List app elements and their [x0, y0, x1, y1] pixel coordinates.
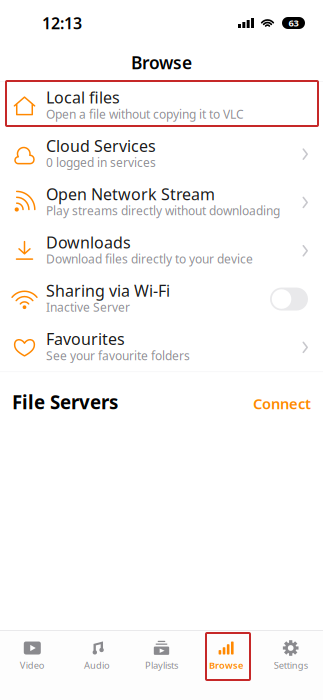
button[interactable]: Settings [258, 631, 323, 700]
staticText: Downloads [46, 232, 131, 253]
staticText: Open Network Stream [46, 183, 215, 205]
staticText: 63 [288, 17, 298, 29]
button[interactable]: Audio [65, 631, 129, 700]
button[interactable]: Connect [253, 394, 323, 414]
staticText: Browse [209, 659, 243, 671]
button[interactable]: Playlists [129, 631, 194, 700]
staticText: Local files [46, 87, 120, 108]
staticText: Cloud Services [46, 135, 156, 156]
button[interactable]: Cloud Services [0, 130, 323, 178]
staticText: Playlists [145, 659, 178, 671]
button[interactable]: Sharing via Wi-Fi [0, 275, 323, 323]
staticText: Audio [84, 659, 110, 671]
button[interactable]: Downloads [0, 227, 323, 275]
staticText: Play streams directly without downloadin… [46, 203, 280, 218]
staticText: Connect [253, 394, 311, 413]
staticText: Open a file without copying it to VLC [46, 106, 244, 122]
staticText: Video [20, 659, 45, 671]
staticText: Settings [274, 659, 308, 671]
button[interactable]: Video [0, 631, 65, 700]
button[interactable]: Open Network Stream [0, 178, 323, 227]
staticText: Sharing via Wi-Fi [46, 280, 170, 301]
staticText: Download files directly to your device [46, 251, 253, 267]
staticText: Inactive Server [46, 299, 130, 315]
button[interactable]: Local files [0, 82, 323, 130]
button[interactable]: Sharing via Wi-Fi toggle [270, 287, 308, 310]
staticText: 0 logged in services [46, 154, 156, 170]
button[interactable]: Browse [194, 631, 258, 700]
staticText: 12:13 [42, 12, 82, 34]
button[interactable]: Favourites [0, 323, 323, 371]
staticText: Browse [131, 51, 192, 74]
staticText: File Servers [12, 389, 118, 414]
staticText: See your favourite folders [46, 347, 190, 363]
staticText: Favourites [46, 328, 125, 349]
